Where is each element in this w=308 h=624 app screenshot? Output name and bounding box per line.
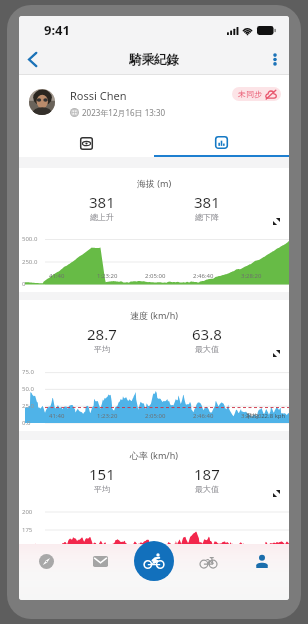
staticText: 200 (22, 508, 33, 516)
staticText: 1:23:20 (97, 412, 118, 420)
staticText: 41:40 (49, 412, 65, 420)
staticText: Rossi Chen (70, 88, 127, 103)
staticText: 3:28:20 (241, 272, 262, 280)
button[interactable]: Back (19, 44, 45, 75)
staticText: 2:46:40 (193, 412, 214, 420)
staticText: 500.0 (22, 235, 38, 243)
other: Expand chart (273, 350, 280, 357)
staticText: 騎乘紀錄 (129, 52, 179, 68)
staticText: 2:05:00 (145, 272, 166, 280)
button[interactable]: 未同步 (232, 87, 281, 101)
staticText: 2023年12月16日 13:30 (82, 107, 166, 118)
staticText: 2:05:00 (145, 412, 166, 420)
staticText: 1:23:20 (97, 272, 118, 280)
staticText: 25.0 (22, 402, 34, 410)
button[interactable]: Rides (181, 546, 235, 576)
staticText: 151 (89, 464, 115, 484)
staticText: 381 (89, 192, 115, 212)
staticText: 速度 (km/h) (19, 309, 289, 321)
other: Expand chart (273, 490, 280, 497)
staticText: 250.0 (22, 258, 38, 266)
staticText: 381 (194, 192, 220, 212)
staticText: 最大值 (195, 344, 219, 354)
staticText: 平均 (94, 484, 110, 494)
staticText: 最大值 (195, 484, 219, 494)
staticText: 41:40 (49, 272, 65, 280)
button[interactable]: Messages (73, 546, 127, 576)
button[interactable]: Map view (19, 130, 154, 157)
button[interactable]: Profile (235, 546, 289, 576)
staticText: 2:46:40 (193, 272, 214, 280)
staticText: 175 (22, 526, 33, 534)
staticText: 總下降 (195, 212, 219, 222)
other: Expand chart (273, 218, 280, 225)
staticText: 9:41 (44, 21, 70, 39)
button[interactable]: Explore (19, 546, 73, 576)
staticText: 平均 (94, 344, 110, 354)
staticText: 63.8 (192, 324, 222, 344)
staticText: 3:28:20 (241, 412, 262, 420)
staticText: 50.0 (22, 385, 34, 393)
staticText: 28.7 (87, 324, 117, 344)
button[interactable]: More options (261, 44, 289, 75)
staticText: 未同步 (238, 89, 262, 99)
staticText: 0.0 (22, 419, 31, 427)
button[interactable]: Statistics view (154, 130, 289, 157)
button[interactable]: Start ride (134, 541, 174, 581)
staticText: 187 (194, 464, 220, 484)
staticText: 0 (22, 280, 26, 288)
staticText: 海拔 (m) (19, 177, 289, 189)
staticText: 總上升 (90, 212, 114, 222)
staticText: 心率 (km/h) (19, 449, 289, 461)
staticText: 平均: 22.8 kph (246, 412, 286, 420)
staticText: 75.0 (22, 368, 34, 376)
